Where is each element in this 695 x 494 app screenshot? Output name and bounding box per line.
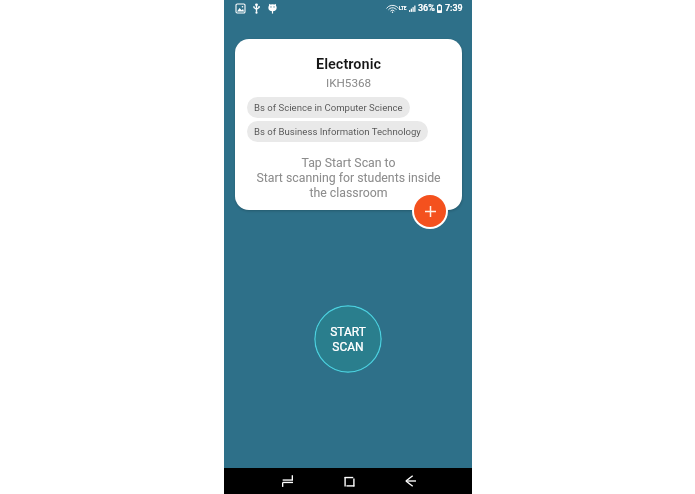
- staticText: Electronic: [316, 56, 382, 73]
- button[interactable]: Bs of Science in Computer Science: [247, 97, 410, 118]
- staticText: Bs of Business Information Technology: [254, 126, 421, 137]
- button[interactable]: Add: [414, 195, 446, 227]
- button[interactable]: Back: [398, 468, 422, 494]
- button[interactable]: Home: [337, 468, 361, 494]
- staticText: LTE: [399, 6, 407, 11]
- staticText: 7:39: [445, 3, 463, 14]
- staticText: Tap Start Scan to Start scanning for stu…: [256, 156, 441, 200]
- staticText: 36%: [418, 3, 435, 14]
- button[interactable]: Bs of Business Information Technology: [247, 121, 428, 142]
- staticText: IKH5368: [326, 76, 372, 90]
- button[interactable]: START SCAN: [314, 305, 382, 373]
- staticText: Bs of Science in Computer Science: [254, 102, 403, 113]
- staticText: START SCAN: [330, 325, 366, 354]
- button[interactable]: Recents: [275, 468, 299, 494]
